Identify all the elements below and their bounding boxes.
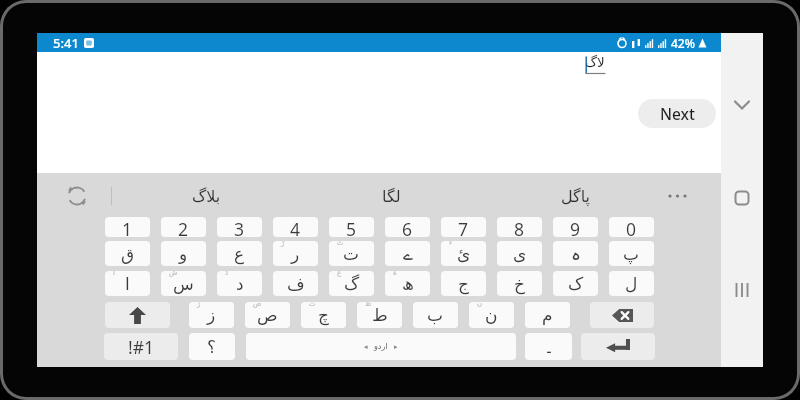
staticText: ت [343, 244, 360, 264]
button[interactable]: ی [497, 241, 542, 266]
staticText: م [542, 305, 553, 325]
button[interactable]: Space [246, 333, 516, 360]
staticText: ہ [571, 244, 581, 264]
button[interactable]: م [525, 302, 570, 328]
button[interactable]: 2 [161, 217, 206, 237]
button[interactable]: غ [329, 271, 374, 296]
button[interactable]: ة [385, 271, 430, 296]
staticText: ر [291, 244, 300, 264]
button[interactable]: More options [656, 183, 700, 209]
staticText: ا [125, 274, 130, 294]
button[interactable]: ژ [189, 302, 234, 328]
staticText: ض [253, 302, 262, 308]
button[interactable]: بلاگ [146, 181, 266, 211]
staticText: و [179, 244, 188, 264]
staticText: 5:41 [53, 34, 79, 52]
staticText: ب [427, 305, 444, 325]
staticText: ط [372, 305, 388, 325]
staticText: ے [403, 244, 413, 264]
button[interactable]: ع [217, 241, 262, 266]
button[interactable]: 7 [441, 217, 486, 237]
staticText: لاگ [585, 54, 605, 70]
button[interactable]: Next [638, 99, 716, 128]
button[interactable]: 6 [385, 217, 430, 237]
staticText: ة [393, 271, 397, 277]
button[interactable]: 8 [497, 217, 542, 237]
button[interactable]: و [161, 241, 206, 266]
button[interactable]: 9 [553, 217, 598, 237]
button[interactable]: ڑ [273, 241, 318, 266]
button[interactable]: ب [413, 302, 458, 328]
staticText: چ [318, 305, 329, 325]
staticText: 42% [671, 35, 695, 51]
button[interactable]: ل [609, 271, 654, 296]
button[interactable]: پاگل [516, 181, 636, 211]
button[interactable]: 4 [273, 217, 318, 237]
button[interactable]: ف [273, 271, 318, 296]
staticText: 1 [122, 217, 133, 237]
staticText: غ [337, 271, 342, 277]
staticText: لگا [382, 187, 401, 206]
staticText: پاگل [561, 187, 591, 206]
button[interactable]: Hide keyboard [721, 84, 763, 126]
staticText: ئ [457, 244, 471, 264]
staticText: ش [169, 271, 178, 277]
staticText: 0 [626, 217, 637, 237]
staticText: آ [113, 271, 115, 277]
button[interactable]: ٹ [329, 241, 374, 266]
button[interactable]: Recent apps [721, 269, 763, 311]
staticText: 5 [346, 217, 357, 237]
button[interactable]: 1 [105, 217, 150, 237]
button[interactable]: Voice typing [58, 183, 96, 209]
staticText: ی [513, 244, 527, 264]
staticText: 4 [290, 217, 301, 237]
staticText: د [236, 274, 244, 294]
button[interactable]: Enter [581, 333, 655, 360]
staticText: ؟ [207, 337, 217, 357]
button[interactable]: آ [105, 271, 150, 296]
staticText: 9 [570, 217, 581, 237]
staticText: ف [287, 274, 305, 294]
button[interactable]: !#1 [104, 333, 178, 360]
staticText: 7 [458, 217, 469, 237]
button[interactable]: ک [553, 271, 598, 296]
staticText: 8 [514, 217, 525, 237]
staticText: ۔ [544, 337, 554, 357]
staticText: س [173, 274, 194, 294]
staticText: بلاگ [192, 187, 221, 206]
staticText: ق [121, 244, 135, 264]
button[interactable]: پ [609, 241, 654, 266]
button[interactable]: ؟ [189, 333, 235, 360]
button[interactable]: ض [245, 302, 290, 328]
button[interactable]: ے [385, 241, 430, 266]
button[interactable]: خ [497, 271, 542, 296]
button[interactable]: ں [469, 302, 514, 328]
staticText: ▸ [394, 343, 398, 351]
button[interactable]: ہ [553, 241, 598, 266]
button[interactable]: Home [721, 177, 763, 219]
staticText: اردو [374, 342, 388, 351]
button[interactable]: 0 [609, 217, 654, 237]
button[interactable]: ظ [357, 302, 402, 328]
staticText: ھ [402, 274, 414, 294]
button[interactable]: ق [105, 241, 150, 266]
staticText: ن [485, 305, 498, 325]
button[interactable]: ج [441, 271, 486, 296]
button[interactable]: Shift [105, 302, 170, 328]
staticText: ڈ [225, 271, 229, 277]
staticText: ء [449, 241, 453, 247]
button[interactable]: 3 [217, 217, 262, 237]
staticText: Next [660, 103, 695, 124]
button[interactable]: 5 [329, 217, 374, 237]
button[interactable]: ء [441, 241, 486, 266]
staticText: گ [344, 274, 360, 294]
staticText: 2 [178, 217, 189, 237]
button[interactable]: ۔ [525, 333, 572, 360]
button[interactable]: ڈ [217, 271, 262, 296]
button[interactable]: لگا [331, 181, 451, 211]
button[interactable]: ث [301, 302, 346, 328]
staticText: ک [568, 274, 584, 294]
button[interactable]: ش [161, 271, 206, 296]
button[interactable]: Backspace [590, 302, 654, 328]
staticText: ظ [365, 302, 372, 308]
